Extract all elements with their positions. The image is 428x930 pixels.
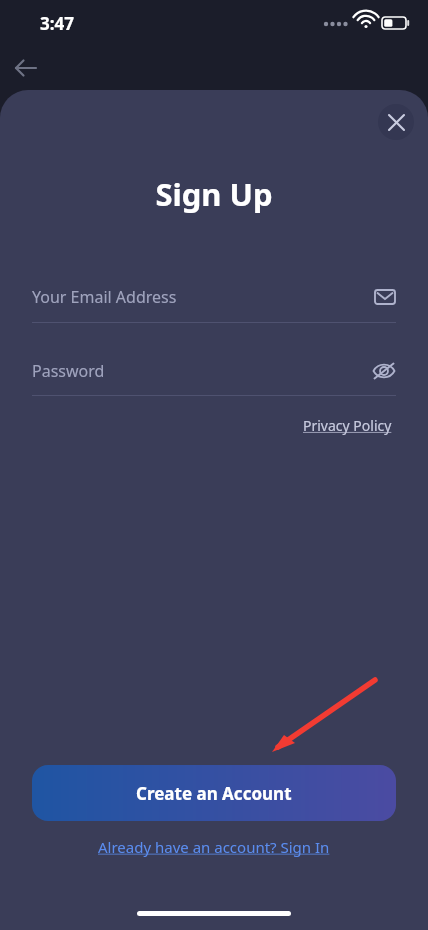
button[interactable]: Password [32,346,396,396]
staticText: 3:47 [40,12,74,35]
other: Show password [372,361,396,381]
staticText: Sign Up [0,173,428,215]
button[interactable]: Your Email Address [32,272,396,322]
button[interactable]: Close [378,104,414,140]
button[interactable]: Back [6,48,46,88]
staticText: Your Email Address [32,286,177,308]
button[interactable]: Privacy Policy [299,412,396,439]
staticText: Already have an account? Sign In [98,837,330,857]
button[interactable]: Create an Account [32,765,396,821]
staticText: Privacy Policy [303,416,392,435]
staticText: Password [32,360,105,382]
button[interactable]: Already have an account? Sign In [90,833,338,861]
staticText: Create an Account [136,782,292,805]
